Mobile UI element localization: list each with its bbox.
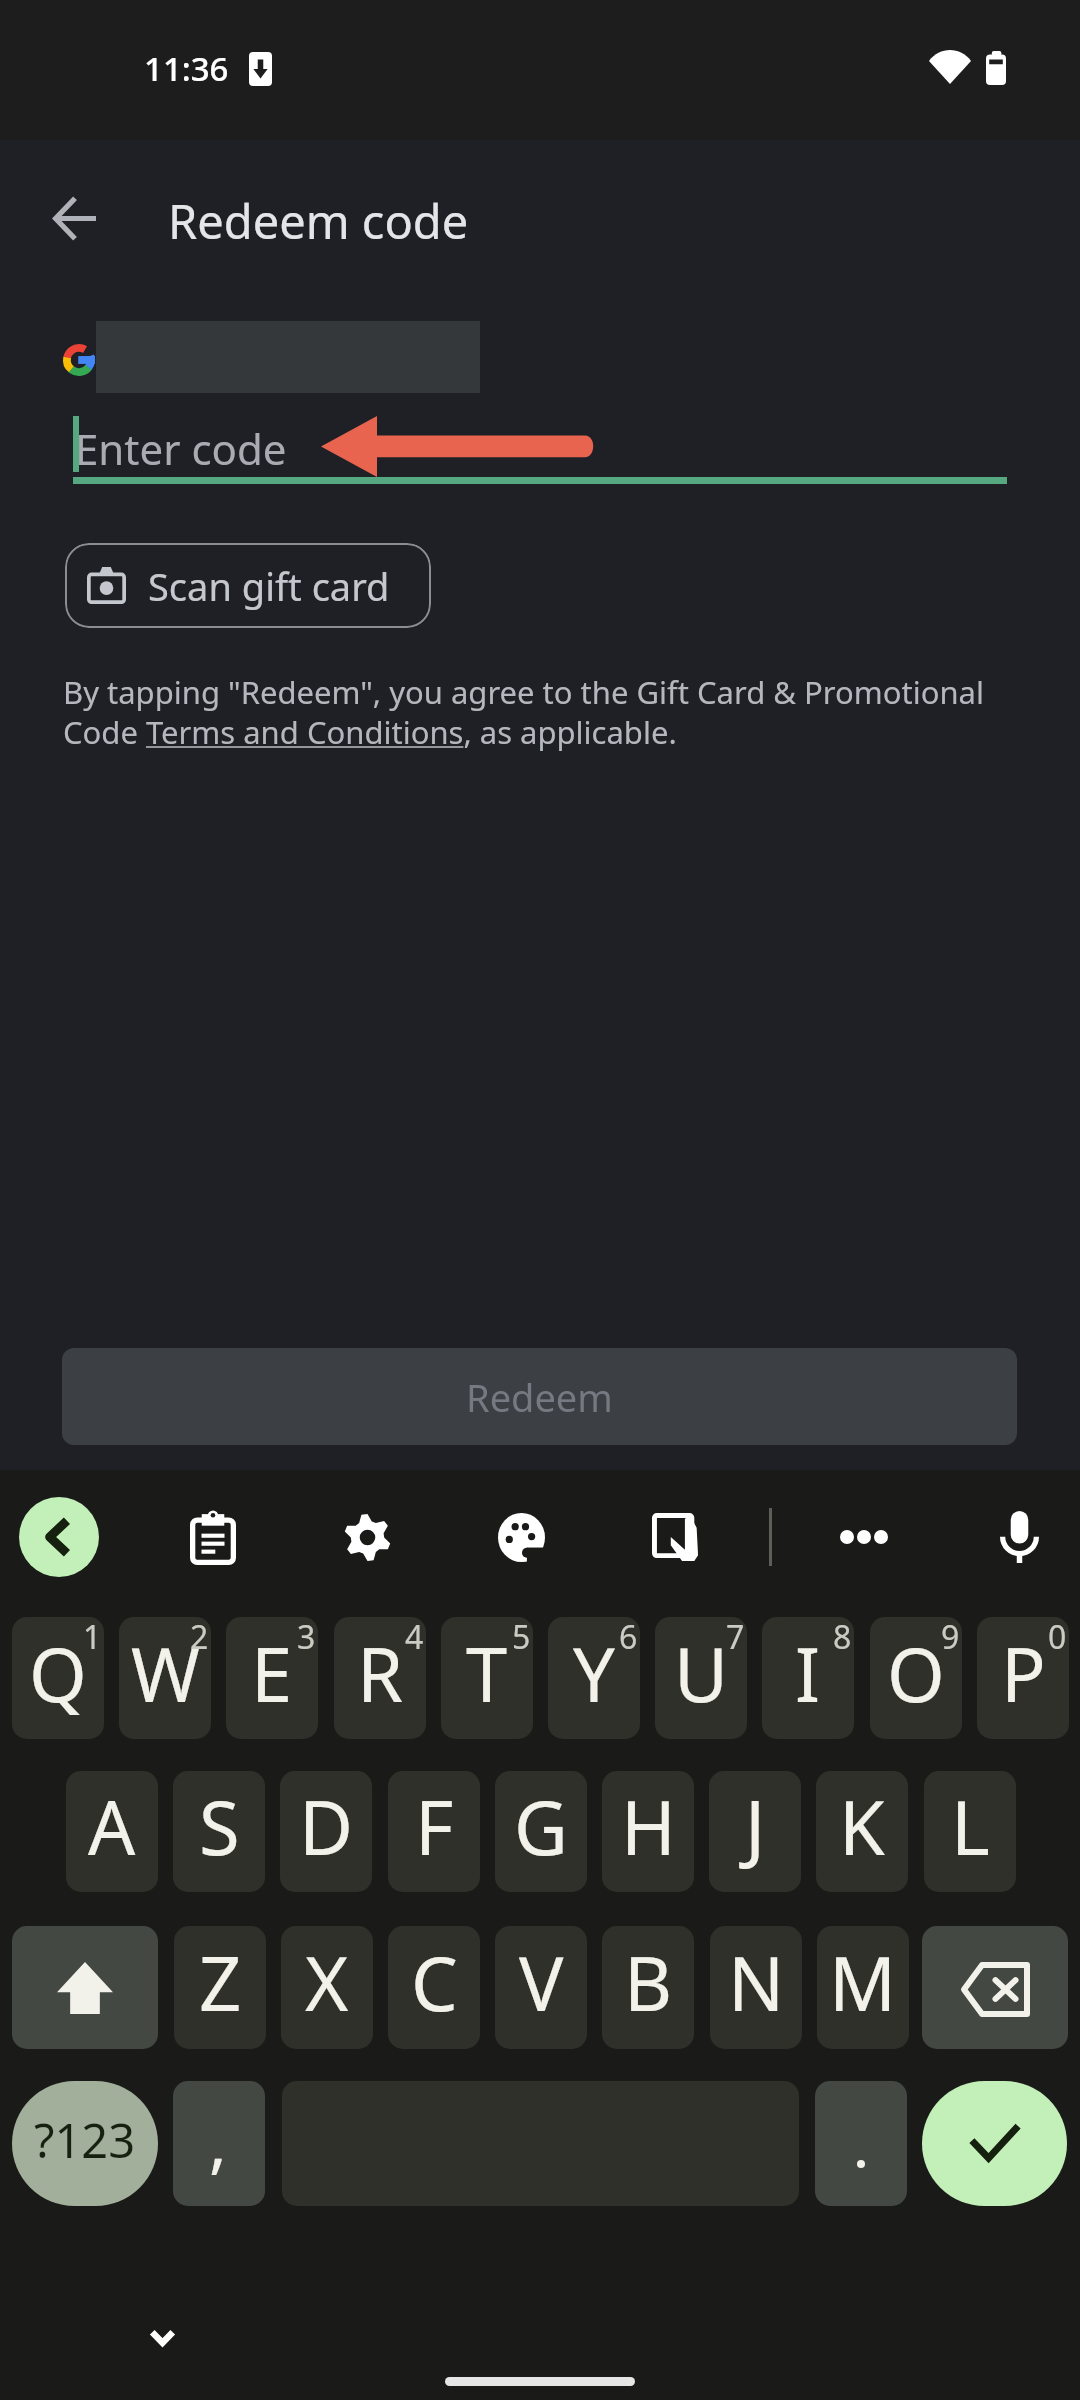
staticText: B: [624, 1932, 673, 2033]
button[interactable]: H: [602, 1771, 694, 1892]
button[interactable]: Voice input: [979, 1497, 1059, 1577]
button[interactable]: [815, 2081, 907, 2206]
staticText: I: [795, 1623, 821, 1724]
button[interactable]: X: [281, 1926, 373, 2049]
button[interactable]: A: [66, 1771, 158, 1892]
button[interactable]: R: [334, 1617, 426, 1739]
button[interactable]: Scan gift card: [65, 543, 431, 628]
button[interactable]: Y: [548, 1617, 640, 1739]
staticText: N: [728, 1932, 785, 2033]
button[interactable]: V: [495, 1926, 587, 2049]
button[interactable]: Q: [12, 1617, 104, 1739]
staticText: Y: [573, 1623, 615, 1724]
staticText: By tapping "Redeem", you agree to the Gi…: [63, 671, 1007, 753]
button[interactable]: N: [710, 1926, 802, 2049]
button[interactable]: Shift: [12, 1926, 158, 2049]
staticText: 1: [83, 1617, 102, 1659]
staticText: F: [415, 1776, 454, 1877]
staticText: D: [299, 1776, 354, 1877]
button[interactable]: L: [924, 1771, 1016, 1892]
button[interactable]: B: [602, 1926, 694, 2049]
staticText: 3: [297, 1617, 316, 1659]
button[interactable]: Settings: [327, 1497, 407, 1577]
button[interactable]: Themes: [481, 1497, 561, 1577]
staticText: E: [251, 1623, 293, 1724]
staticText: Scan gift card: [148, 560, 390, 612]
button[interactable]: ?123: [12, 2081, 158, 2206]
staticText: S: [199, 1776, 240, 1877]
button[interactable]: C: [388, 1926, 480, 2049]
button[interactable]: ,: [173, 2081, 265, 2206]
button[interactable]: F: [388, 1771, 480, 1892]
staticText: Z: [199, 1932, 242, 2033]
staticText: C: [411, 1932, 458, 2033]
staticText: H: [621, 1776, 676, 1877]
staticText: X: [305, 1932, 349, 2033]
button[interactable]: Enter: [922, 2081, 1067, 2206]
button[interactable]: J: [709, 1771, 801, 1892]
button[interactable]: Clipboard: [173, 1497, 253, 1577]
button[interactable]: Back: [26, 170, 122, 266]
staticText: P: [1001, 1623, 1046, 1724]
staticText: R: [357, 1623, 404, 1724]
button[interactable]: Redeem: [62, 1348, 1017, 1445]
button[interactable]: Z: [174, 1926, 266, 2049]
staticText: ?123: [34, 2108, 136, 2172]
staticText: Q: [29, 1623, 87, 1724]
staticText: 11:36: [144, 46, 229, 91]
staticText: T: [466, 1623, 508, 1724]
button[interactable]: W: [119, 1617, 211, 1739]
staticText: 4: [405, 1617, 424, 1659]
staticText: U: [674, 1623, 729, 1724]
button[interactable]: S: [173, 1771, 265, 1892]
staticText: A: [88, 1776, 136, 1877]
staticText: ,: [209, 2096, 227, 2186]
staticText: W: [131, 1623, 200, 1724]
button[interactable]: G: [495, 1771, 587, 1892]
button[interactable]: E: [226, 1617, 318, 1739]
staticText: Redeem: [466, 1371, 613, 1423]
button[interactable]: Backspace: [922, 1926, 1068, 2049]
button[interactable]: T: [441, 1617, 533, 1739]
staticText: M: [829, 1932, 897, 2033]
staticText: 6: [619, 1617, 638, 1659]
button[interactable]: D: [280, 1771, 372, 1892]
staticText: 9: [941, 1617, 960, 1659]
staticText: Enter code: [75, 420, 287, 477]
button[interactable]: Previous suggestion: [19, 1497, 99, 1577]
button[interactable]: U: [655, 1617, 747, 1739]
staticText: 2: [190, 1617, 209, 1659]
staticText: V: [519, 1932, 564, 2033]
button[interactable]: M: [817, 1926, 909, 2049]
button[interactable]: O: [870, 1617, 962, 1739]
staticText: L: [951, 1776, 990, 1877]
staticText: O: [887, 1623, 945, 1724]
staticText: J: [745, 1776, 766, 1877]
button[interactable]: More options: [824, 1497, 904, 1577]
button[interactable]: K: [816, 1771, 908, 1892]
staticText: Redeem code: [168, 189, 469, 253]
staticText: 7: [726, 1617, 745, 1659]
button[interactable]: I: [762, 1617, 854, 1739]
staticText: 5: [512, 1617, 531, 1659]
staticText: 8: [833, 1617, 852, 1659]
other: Hide keyboard: [149, 2329, 176, 2346]
staticText: K: [839, 1776, 885, 1877]
button[interactable]: P: [977, 1617, 1069, 1739]
staticText: 0: [1048, 1617, 1067, 1659]
staticText: G: [514, 1776, 568, 1877]
button[interactable]: Stickers: [635, 1497, 715, 1577]
